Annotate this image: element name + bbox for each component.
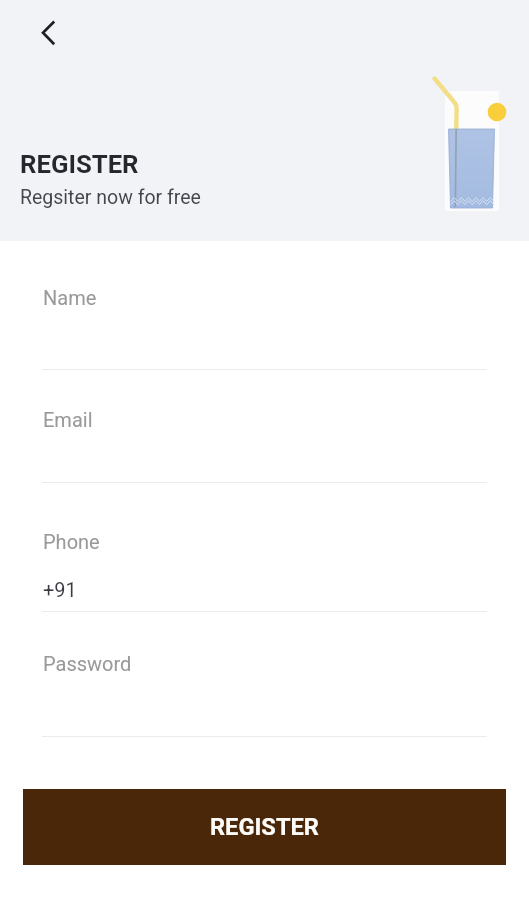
staticText: Name: [43, 286, 97, 309]
button[interactable]: REGISTER: [23, 789, 506, 865]
button[interactable]: Password: [42, 638, 487, 737]
staticText: REGISTER: [210, 813, 319, 841]
button[interactable]: Phone: [42, 516, 487, 612]
staticText: REGISTER: [20, 149, 139, 179]
button[interactable]: Email: [42, 394, 487, 484]
staticText: Regsiter now for free: [20, 186, 201, 209]
staticText: +91: [43, 578, 77, 601]
staticText: Password: [43, 652, 132, 675]
staticText: Phone: [43, 530, 100, 553]
button[interactable]: Back: [24, 10, 70, 56]
button[interactable]: Name: [42, 272, 487, 370]
staticText: Email: [43, 408, 93, 431]
